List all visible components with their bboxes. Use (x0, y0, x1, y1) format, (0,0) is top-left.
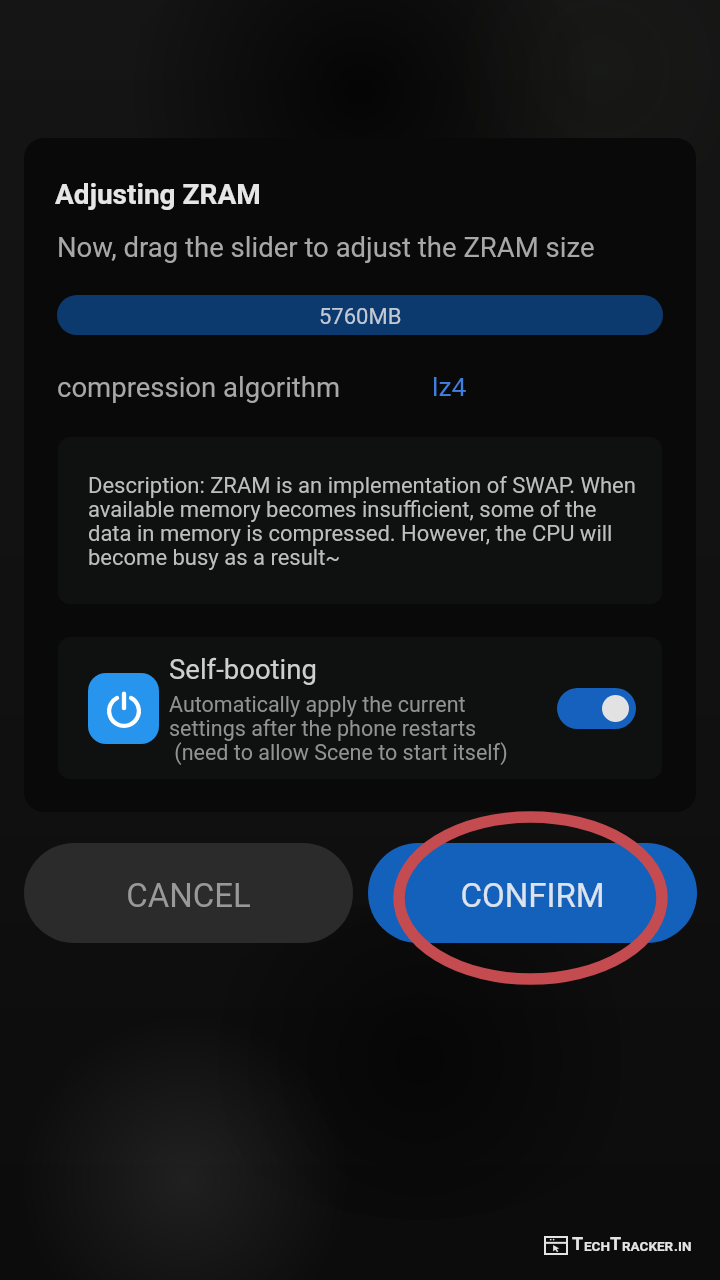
button[interactable]: 5760MB (57, 295, 663, 335)
staticText: compression algorithm (57, 371, 341, 403)
staticText: Automatically apply the current settings… (169, 692, 508, 765)
staticText: Description: ZRAM is an implementation o… (88, 473, 644, 570)
staticText: Now, drag the slider to adjust the ZRAM … (57, 231, 595, 263)
staticText: ECH (584, 1238, 610, 1254)
staticText: T (610, 1233, 622, 1254)
staticText: CANCEL (126, 876, 251, 915)
staticText: CONFIRM (460, 876, 605, 915)
button[interactable]: lz4 (432, 371, 467, 402)
staticText: Self-booting (169, 653, 317, 685)
button[interactable]: Self-booting (58, 637, 662, 779)
button[interactable]: Self-booting toggle (557, 688, 636, 729)
staticText: IN (678, 1238, 692, 1254)
staticText: RACKER (622, 1238, 674, 1254)
staticText: 5760MB (319, 304, 402, 330)
staticText: . (674, 1238, 678, 1254)
staticText: T (572, 1233, 584, 1254)
button[interactable]: CANCEL (24, 843, 353, 943)
staticText: Adjusting ZRAM (55, 178, 261, 211)
button[interactable]: CONFIRM (368, 843, 697, 943)
